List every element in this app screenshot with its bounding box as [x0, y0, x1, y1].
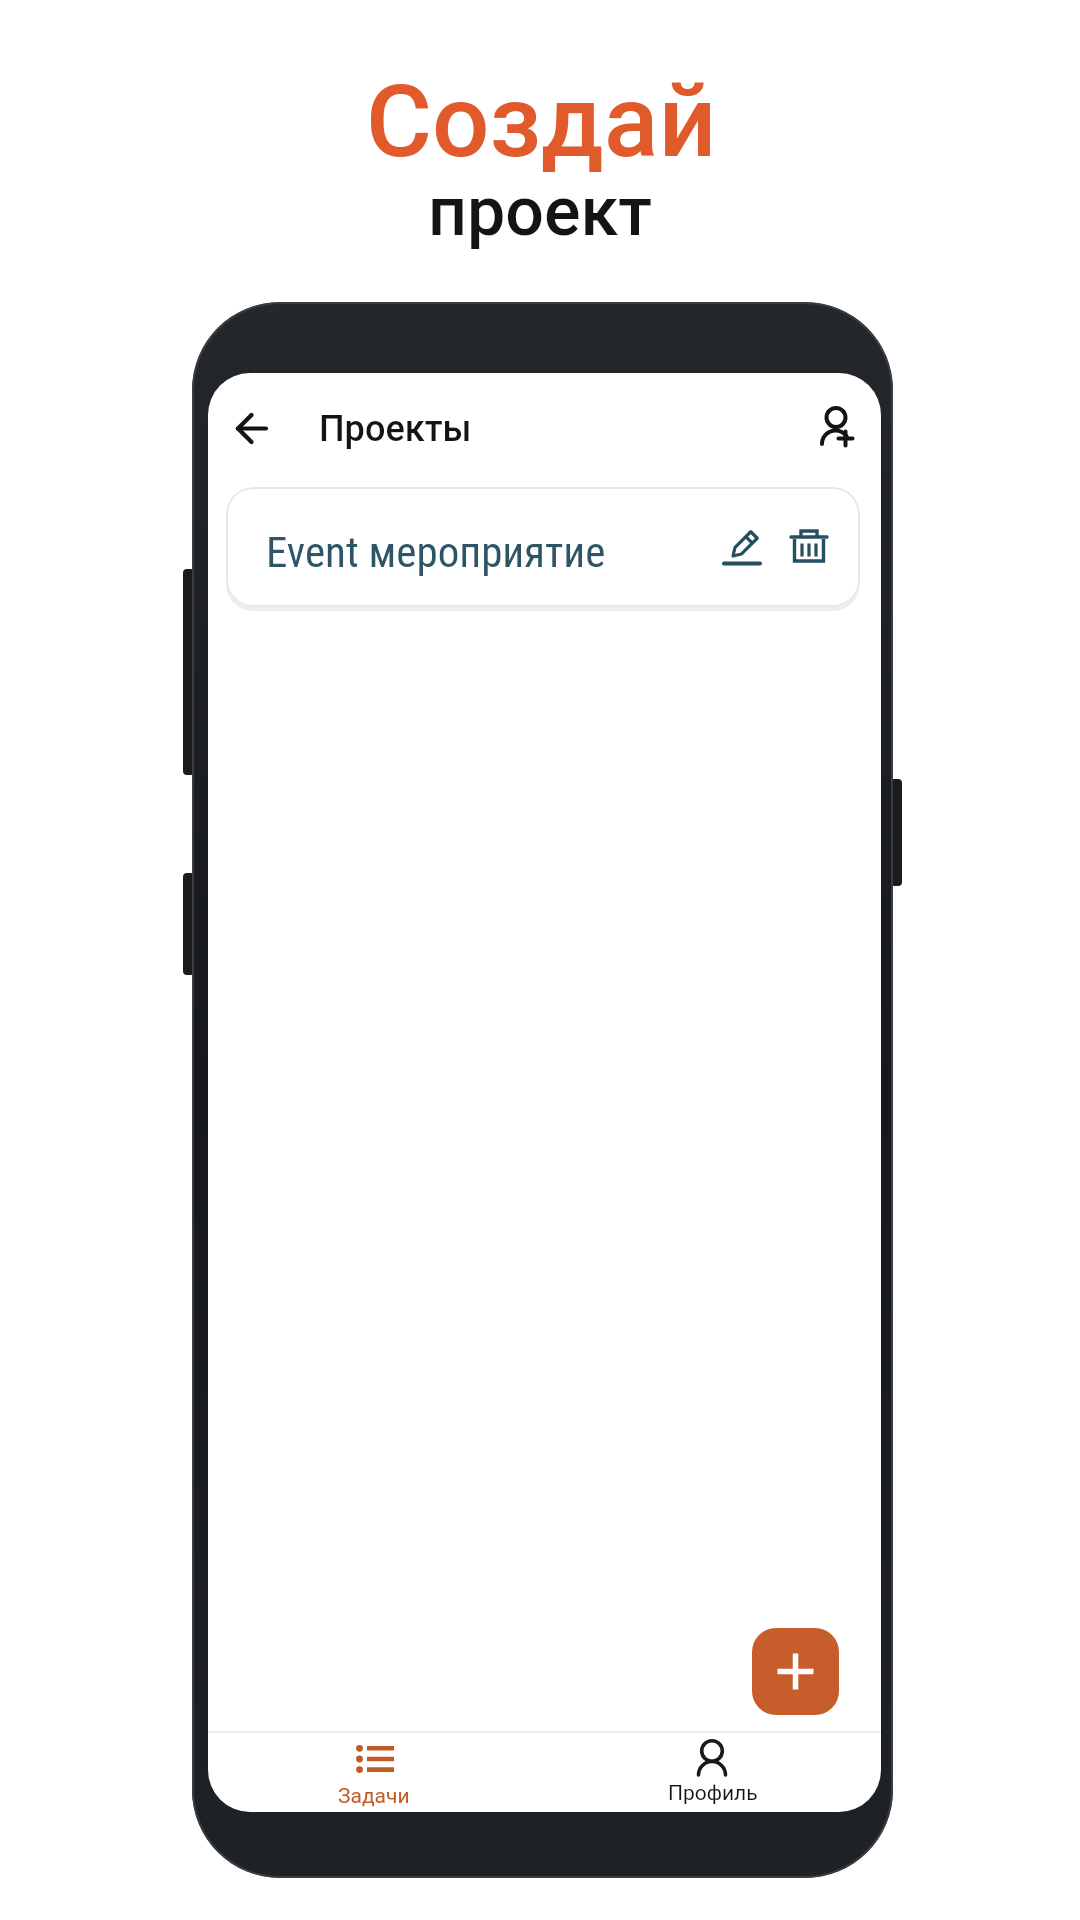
staticText: Задачи	[338, 1784, 410, 1809]
button[interactable]	[818, 403, 864, 449]
button[interactable]	[723, 528, 763, 566]
button[interactable]: Event мероприятие	[226, 487, 860, 607]
staticText: Создай	[366, 62, 717, 180]
staticText: Профиль	[668, 1781, 758, 1806]
button[interactable]: Профиль	[623, 1731, 803, 1806]
staticText: Event мероприятие	[266, 527, 606, 577]
staticText: проект	[428, 172, 652, 252]
button[interactable]	[235, 412, 268, 445]
button[interactable]	[789, 528, 829, 566]
staticText: Проекты	[319, 408, 472, 450]
button[interactable]	[752, 1628, 839, 1715]
button[interactable]: Задачи	[284, 1735, 464, 1809]
